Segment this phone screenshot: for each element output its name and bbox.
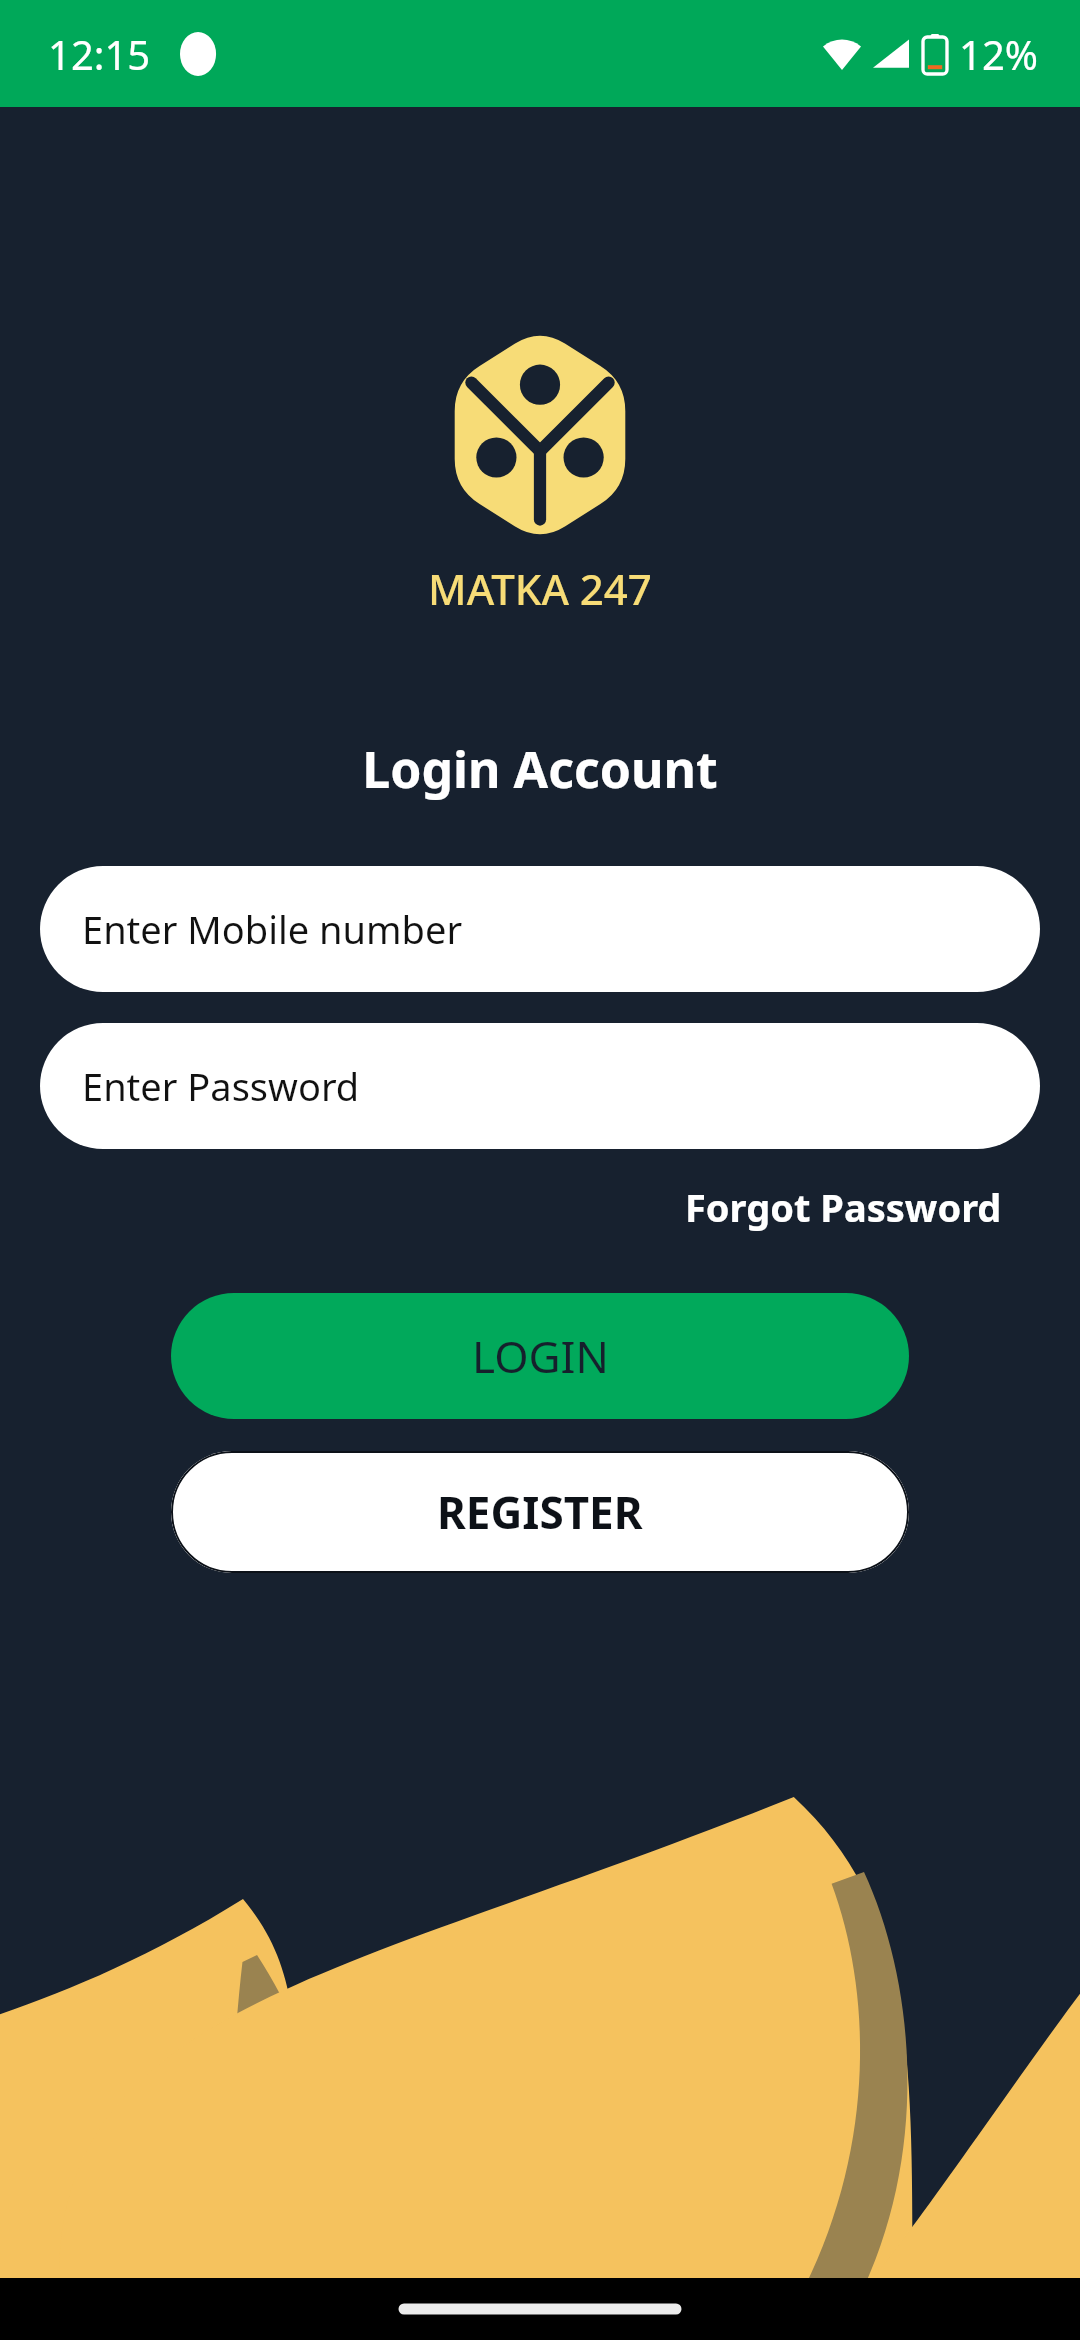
staticText: Login Account xyxy=(0,735,1080,803)
staticText: REGISTER xyxy=(437,1482,643,1542)
button[interactable]: Forgot Password xyxy=(685,1175,1080,1239)
staticText: Enter Mobile number xyxy=(82,903,463,955)
staticText: Enter Password xyxy=(82,1060,360,1112)
button[interactable]: Enter Mobile number xyxy=(40,866,1040,992)
button[interactable]: REGISTER xyxy=(171,1451,909,1573)
button[interactable]: Enter Password xyxy=(40,1023,1040,1149)
staticText: MATKA 247 xyxy=(0,560,1080,617)
button[interactable]: LOGIN xyxy=(171,1293,909,1419)
staticText: LOGIN xyxy=(472,1326,609,1386)
staticText: 12:15 xyxy=(48,27,151,81)
staticText: Forgot Password xyxy=(685,1181,1002,1233)
staticText: 12% xyxy=(959,27,1038,81)
